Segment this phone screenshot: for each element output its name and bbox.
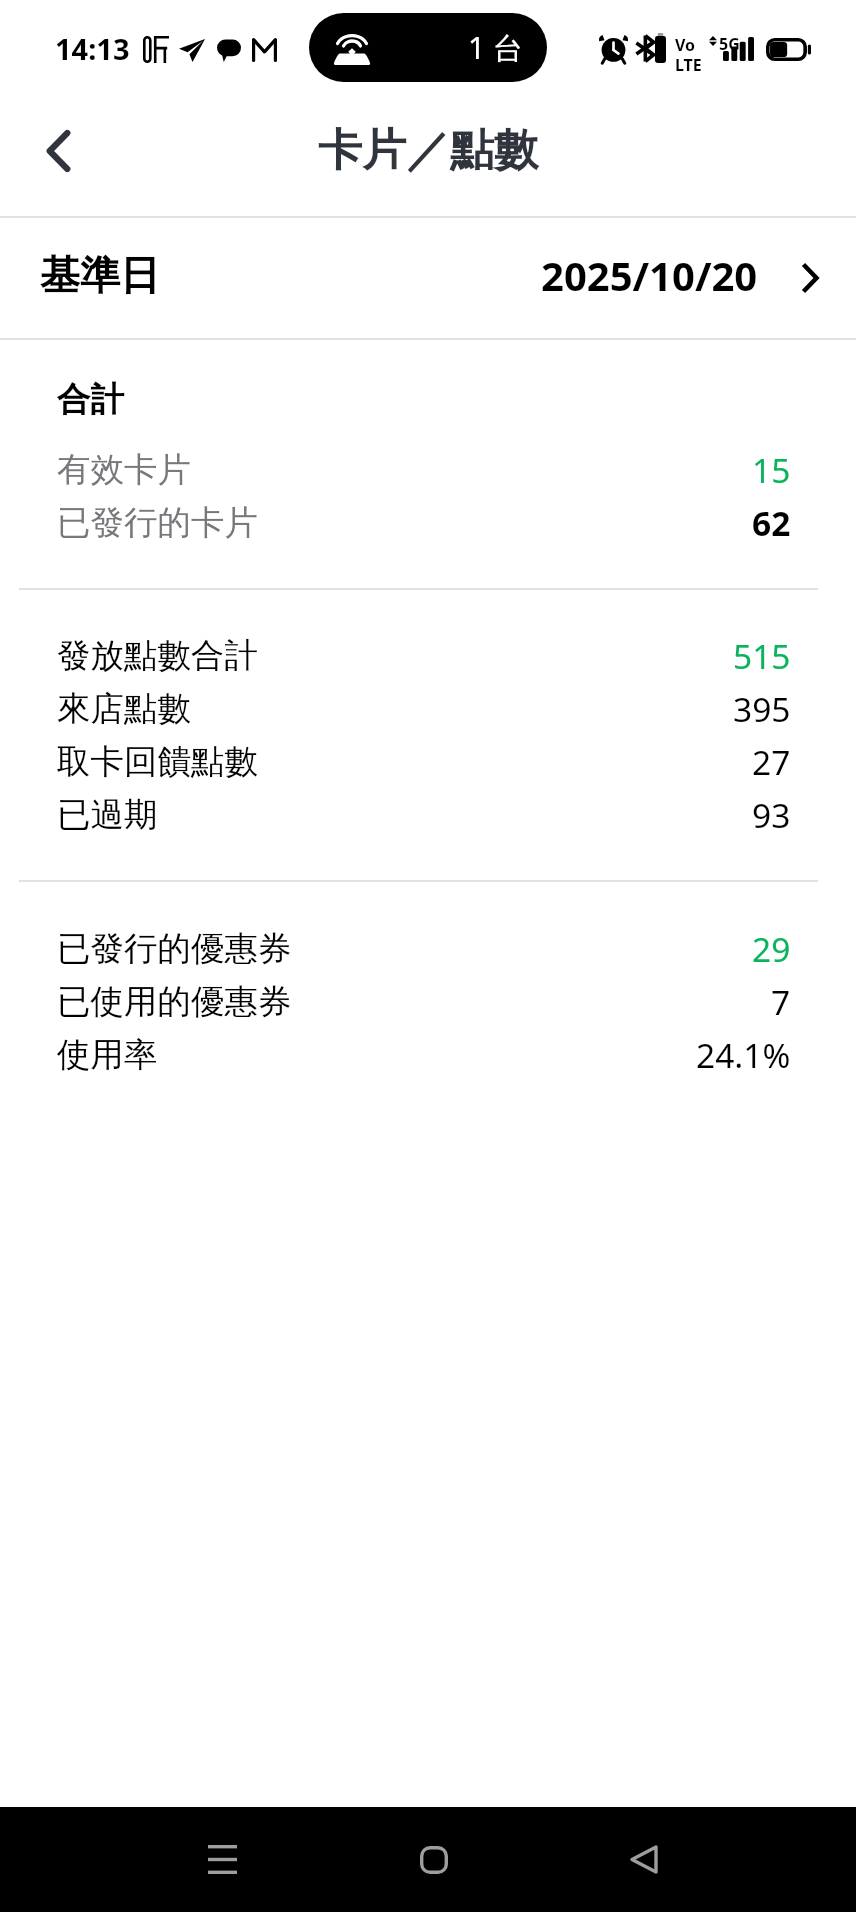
staticText: 發放點數合計: [57, 635, 258, 677]
button[interactable]: 基準日: [0, 218, 856, 338]
staticText: 取卡回饋點數: [57, 741, 258, 783]
staticText: 5G: [719, 33, 740, 55]
staticText: 24.1%: [696, 1032, 791, 1078]
staticText: 使用率: [57, 1034, 158, 1076]
staticText: 基準日: [40, 250, 160, 300]
staticText: 15: [752, 447, 791, 493]
staticText: 卡片／點數: [318, 123, 538, 178]
staticText: 515: [733, 633, 791, 679]
button[interactable]: 有效卡片: [0, 443, 856, 496]
button[interactable]: Hotspot: 1 device: [309, 13, 547, 82]
button[interactable]: 使用率: [0, 1028, 856, 1081]
button[interactable]: Back: [594, 1807, 694, 1912]
staticText: 14:13: [55, 29, 130, 68]
staticText: 有效卡片: [57, 449, 191, 491]
staticText: LTE: [675, 54, 702, 76]
staticText: 已過期: [57, 794, 158, 836]
staticText: 395: [733, 686, 791, 732]
button[interactable]: 已使用的優惠券: [0, 975, 856, 1028]
staticText: 來店點數: [57, 688, 191, 730]
staticText: 29: [752, 926, 791, 972]
staticText: 合計: [57, 379, 124, 421]
staticText: 27: [752, 739, 791, 785]
button[interactable]: 已發行的優惠券: [0, 922, 856, 975]
staticText: 已發行的優惠券: [57, 928, 292, 970]
button[interactable]: 來店點數: [0, 682, 856, 735]
button[interactable]: 發放點數合計: [0, 629, 856, 682]
staticText: Vo: [675, 34, 696, 56]
staticText: 7: [771, 979, 791, 1025]
button[interactable]: Home: [384, 1807, 484, 1912]
staticText: 62: [752, 500, 791, 546]
button[interactable]: 已過期: [0, 788, 856, 841]
staticText: 2025/10/20: [541, 248, 758, 302]
button[interactable]: Back: [0, 95, 112, 216]
staticText: 93: [752, 792, 791, 838]
staticText: 已發行的卡片: [57, 502, 258, 544]
button[interactable]: 取卡回饋點數: [0, 735, 856, 788]
staticText: 1 台: [468, 27, 523, 68]
button[interactable]: 已發行的卡片: [0, 496, 856, 549]
staticText: 已使用的優惠券: [57, 981, 292, 1023]
button[interactable]: Recent apps: [172, 1807, 272, 1912]
